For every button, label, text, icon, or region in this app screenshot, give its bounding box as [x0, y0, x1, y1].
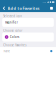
button[interactable]: magnifier: [0, 18, 56, 27]
button[interactable]: Done: [47, 4, 56, 12]
staticText: magnifier: [5, 21, 18, 24]
staticText: Colors: [10, 35, 19, 39]
staticText: Name: [3, 49, 10, 53]
staticText: Add to Favorites: [7, 6, 39, 11]
staticText: Choose favorites: [3, 44, 26, 47]
button[interactable]: Name: [0, 47, 56, 55]
button[interactable]: Back: [0, 4, 7, 12]
staticText: Selected icon: [3, 14, 22, 18]
button[interactable]: Colors: [0, 32, 56, 41]
staticText: 3 KB/s: [42, 1, 46, 3]
staticText: Choose color: [3, 29, 22, 32]
